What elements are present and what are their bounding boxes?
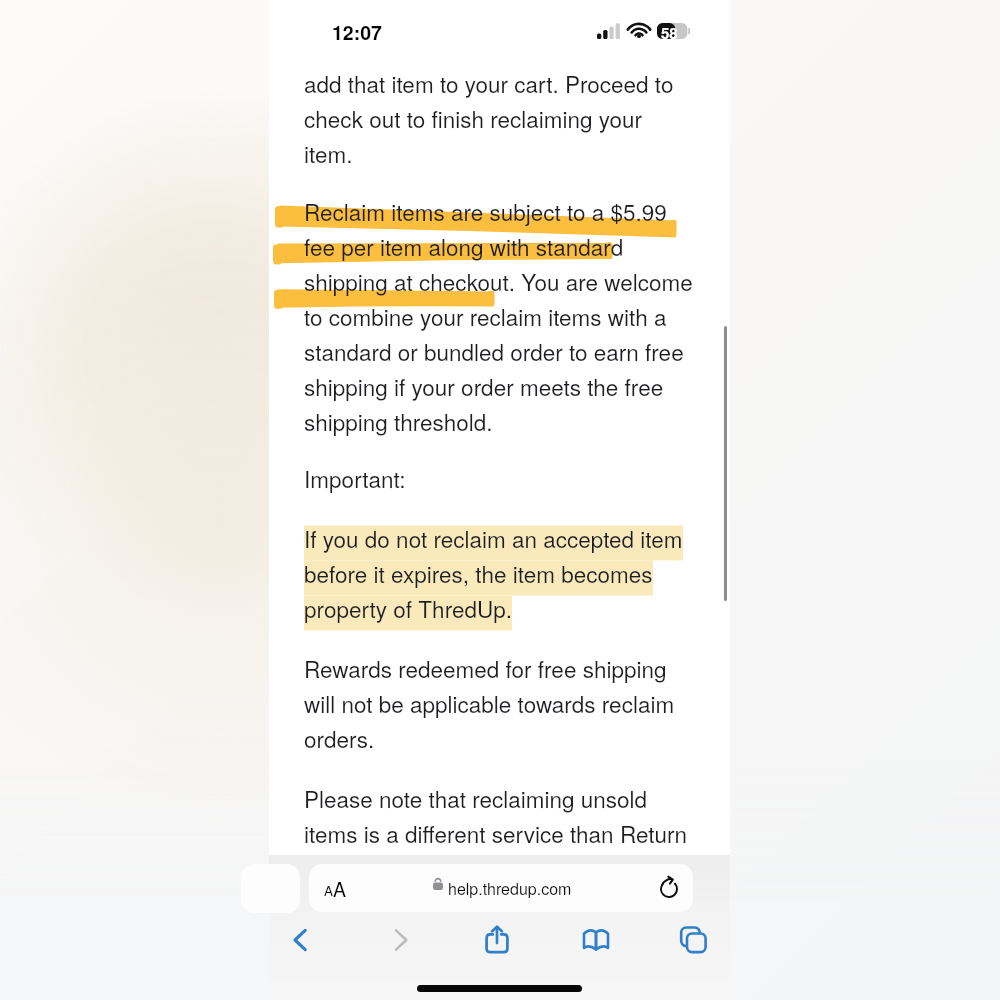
staticText: before it expires, the item becomes	[304, 557, 653, 589]
staticText: orders.	[304, 722, 375, 754]
button[interactable]: Bookmarks	[573, 917, 619, 963]
button[interactable]: Forward	[378, 917, 424, 963]
staticText: property of ThredUp.	[304, 592, 513, 624]
staticText: If you do not reclaim an accepted item	[304, 522, 683, 554]
staticText: Important:	[304, 462, 406, 494]
staticText: help.thredup.com	[448, 877, 572, 900]
staticText: A	[333, 875, 347, 903]
staticText: Rewards redeemed for free shipping	[304, 652, 667, 684]
staticText: 12:07	[332, 18, 382, 46]
staticText: 58	[661, 22, 678, 43]
staticText: add that item to your cart. Proceed to	[304, 67, 674, 99]
staticText: check out to finish reclaiming your	[304, 102, 643, 134]
button[interactable]: Reload	[652, 872, 685, 905]
button[interactable]: Share	[474, 917, 520, 963]
button[interactable]: Text size	[321, 869, 355, 907]
button[interactable]	[309, 864, 693, 912]
staticText: will not be applicable towards reclaim	[304, 687, 675, 719]
staticText: to combine your reclaim items with a	[304, 300, 667, 332]
staticText: shipping at checkout. You are welcome	[304, 265, 693, 297]
staticText: standard or bundled order to earn free	[304, 335, 684, 367]
staticText: items is a different service than Return	[304, 817, 687, 849]
staticText: Reclaim items are subject to a $5.99	[304, 195, 667, 227]
staticText: A	[324, 881, 334, 900]
button[interactable]: Back	[277, 917, 323, 963]
staticText: fee per item along with standard	[304, 230, 624, 262]
staticText: Please note that reclaiming unsold	[304, 782, 648, 814]
staticText: shipping threshold.	[304, 405, 493, 437]
staticText: item.	[304, 137, 353, 169]
staticText: shipping if your order meets the free	[304, 370, 664, 402]
button[interactable]: Tabs	[670, 917, 716, 963]
